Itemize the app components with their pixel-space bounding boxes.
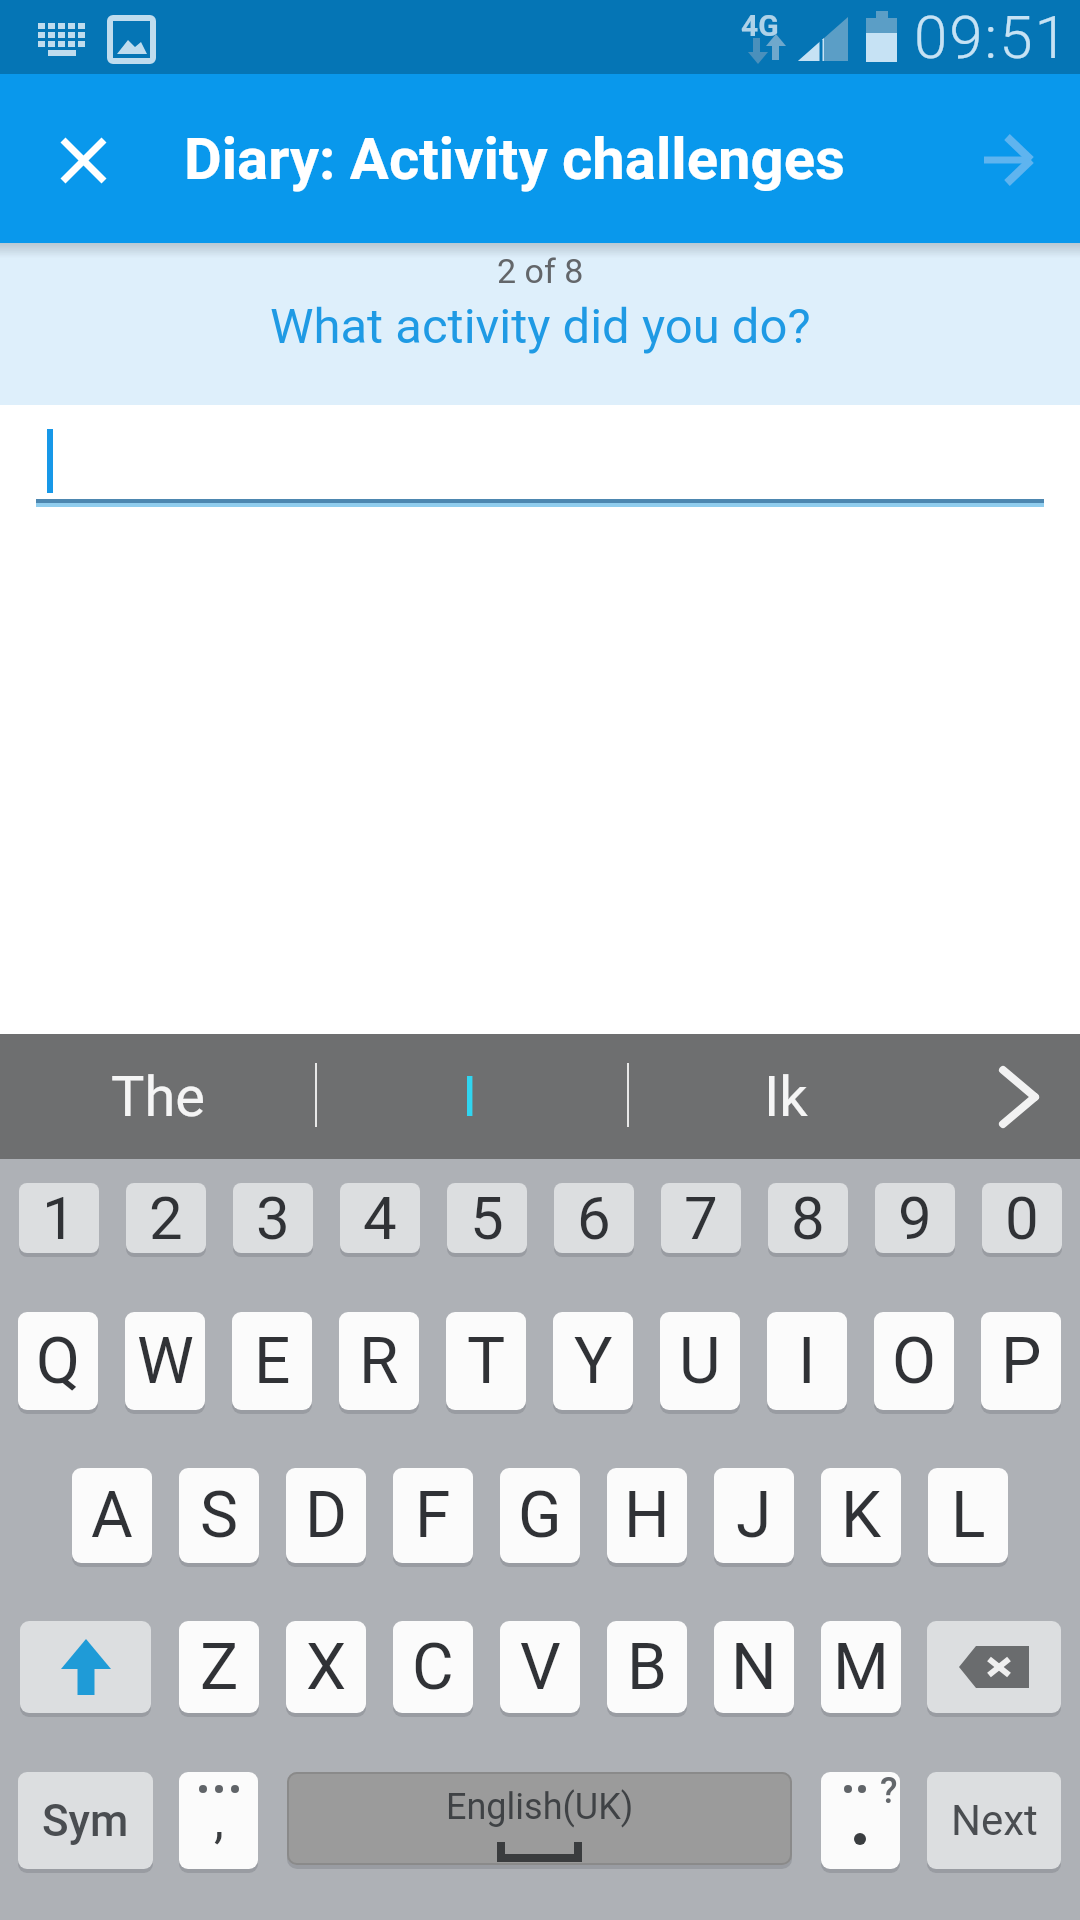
staticText: N <box>731 1630 777 1705</box>
staticText: Diary: Activity challenges <box>184 125 845 193</box>
button[interactable]: 7 <box>661 1183 741 1253</box>
staticText: English(UK) <box>446 1786 634 1828</box>
button[interactable]: , <box>179 1772 258 1869</box>
staticText: The <box>111 1064 205 1130</box>
button[interactable]: I <box>320 1034 620 1159</box>
button[interactable]: ? <box>821 1772 900 1869</box>
staticText: T <box>467 1324 506 1399</box>
staticText: 4G <box>741 8 779 43</box>
staticText: K <box>841 1478 882 1553</box>
button[interactable]: Y <box>553 1312 633 1410</box>
button[interactable]: S <box>179 1468 259 1563</box>
button[interactable]: U <box>660 1312 740 1410</box>
button[interactable]: Q <box>18 1312 98 1410</box>
staticText: P <box>1001 1324 1042 1399</box>
staticText: , <box>214 1791 224 1850</box>
staticText: I <box>798 1324 816 1399</box>
staticText: ? <box>880 1770 898 1812</box>
staticText: G <box>518 1478 562 1553</box>
button[interactable]: Next <box>927 1772 1061 1869</box>
staticText: 4 <box>363 1183 397 1253</box>
staticText: 9 <box>898 1183 932 1253</box>
button[interactable]: F <box>393 1468 473 1563</box>
staticText: U <box>679 1324 721 1399</box>
staticText: 5 <box>470 1183 504 1253</box>
staticText: D <box>305 1478 347 1553</box>
button[interactable]: 1 <box>19 1183 99 1253</box>
button[interactable]: V <box>500 1621 580 1713</box>
button[interactable]: E <box>232 1312 312 1410</box>
button[interactable] <box>960 119 1055 199</box>
staticText: I <box>462 1064 478 1130</box>
button[interactable]: Ik <box>636 1034 936 1159</box>
button[interactable] <box>20 1621 151 1713</box>
button[interactable]: L <box>928 1468 1008 1563</box>
staticText: 7 <box>684 1183 718 1253</box>
staticText: 09:51 <box>914 2 1070 72</box>
staticText: F <box>415 1478 451 1553</box>
staticText: 2 of 8 <box>497 251 584 291</box>
staticText: Ik <box>764 1064 808 1130</box>
staticText: 2 <box>149 1183 183 1253</box>
button[interactable]: A <box>72 1468 152 1563</box>
button[interactable]: 8 <box>768 1183 848 1253</box>
button[interactable]: English(UK) <box>287 1772 792 1865</box>
button[interactable]: 6 <box>554 1183 634 1253</box>
staticText: R <box>359 1324 399 1399</box>
button[interactable]: J <box>714 1468 794 1563</box>
button[interactable]: X <box>286 1621 366 1713</box>
button[interactable]: 5 <box>447 1183 527 1253</box>
button[interactable]: Z <box>179 1621 259 1713</box>
button[interactable]: H <box>607 1468 687 1563</box>
staticText: 1 <box>42 1183 76 1253</box>
staticText: M <box>833 1630 889 1705</box>
button[interactable] <box>48 124 118 194</box>
button[interactable]: O <box>874 1312 954 1410</box>
staticText: Sym <box>42 1795 129 1847</box>
staticText: What activity did you do? <box>270 298 811 355</box>
button[interactable]: 2 <box>126 1183 206 1253</box>
staticText: 3 <box>256 1183 290 1253</box>
staticText: A <box>91 1478 133 1553</box>
button[interactable]: P <box>981 1312 1061 1410</box>
button[interactable]: K <box>821 1468 901 1563</box>
button[interactable]: B <box>607 1621 687 1713</box>
staticText: V <box>520 1630 561 1705</box>
button[interactable]: 9 <box>875 1183 955 1253</box>
button[interactable]: D <box>286 1468 366 1563</box>
button[interactable]: 0 <box>982 1183 1062 1253</box>
staticText: Q <box>36 1324 81 1399</box>
button[interactable]: N <box>714 1621 794 1713</box>
staticText: O <box>892 1324 937 1399</box>
staticText: L <box>951 1478 986 1553</box>
staticText: 0 <box>1005 1183 1039 1253</box>
staticText: W <box>137 1324 194 1399</box>
staticText: E <box>254 1324 291 1399</box>
button[interactable] <box>927 1621 1061 1713</box>
button[interactable]: I <box>767 1312 847 1410</box>
staticText: C <box>412 1630 454 1705</box>
button[interactable]: The <box>10 1034 305 1159</box>
staticText: S <box>200 1478 238 1553</box>
staticText: J <box>736 1478 772 1553</box>
staticText: Next <box>951 1796 1038 1845</box>
staticText: H <box>624 1478 670 1553</box>
button[interactable]: Sym <box>18 1772 153 1869</box>
button[interactable]: M <box>821 1621 901 1713</box>
button[interactable]: 3 <box>233 1183 313 1253</box>
staticText: 8 <box>791 1183 825 1253</box>
button[interactable]: R <box>339 1312 419 1410</box>
staticText: Z <box>200 1630 239 1705</box>
button[interactable]: G <box>500 1468 580 1563</box>
button[interactable]: 4 <box>340 1183 420 1253</box>
staticText: B <box>627 1630 667 1705</box>
button[interactable]: C <box>393 1621 473 1713</box>
button[interactable]: T <box>446 1312 526 1410</box>
staticText: X <box>306 1630 347 1705</box>
button[interactable]: W <box>125 1312 205 1410</box>
button[interactable] <box>975 1034 1070 1159</box>
staticText: Y <box>574 1324 613 1399</box>
staticText: 6 <box>577 1183 611 1253</box>
